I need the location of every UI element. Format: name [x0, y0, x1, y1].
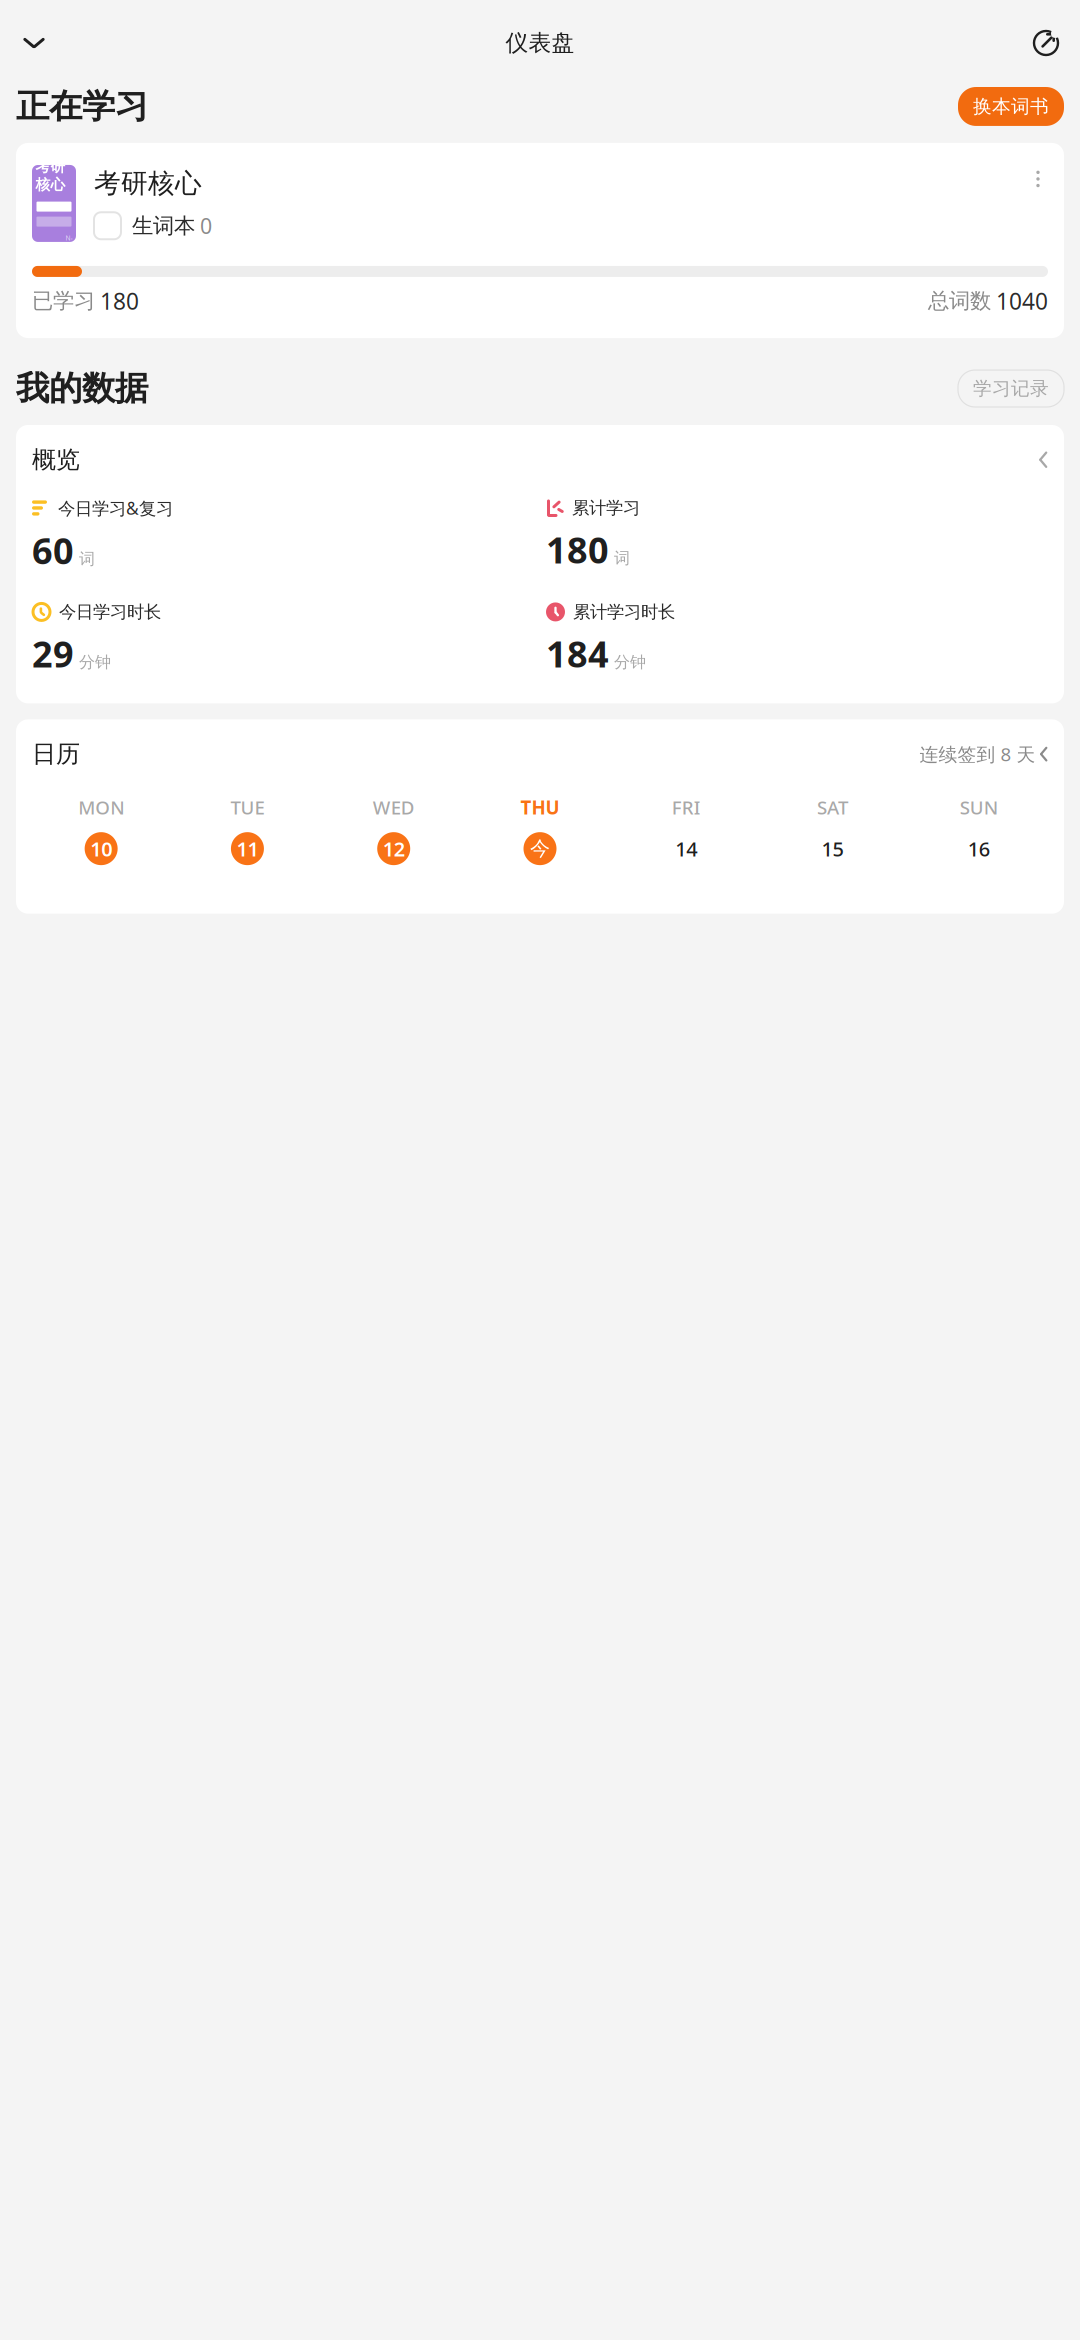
- staticText: 考研核心: [35, 158, 65, 194]
- staticText: 60: [32, 526, 74, 574]
- staticText: 考研核心: [94, 167, 202, 200]
- button[interactable]: 概览: [16, 425, 1064, 482]
- staticText: 16: [968, 835, 990, 862]
- staticText: 换本词书: [973, 95, 1049, 118]
- staticText: 1040: [996, 286, 1048, 316]
- button[interactable]: 15: [759, 832, 906, 866]
- staticText: 分钟: [614, 652, 646, 672]
- staticText: 10: [90, 835, 112, 862]
- staticText: 学习记录: [973, 377, 1049, 400]
- staticText: 累计学习时长: [573, 601, 675, 623]
- staticText: 概览: [32, 445, 80, 474]
- button[interactable]: 16: [906, 832, 1052, 866]
- button[interactable]: Collapse: [14, 23, 54, 63]
- staticText: NE: [65, 234, 72, 251]
- button[interactable]: 14: [613, 832, 759, 866]
- staticText: SAT: [817, 795, 848, 820]
- staticText: 29: [32, 630, 74, 677]
- staticText: 词: [79, 549, 95, 569]
- staticText: 今日学习&复习: [58, 496, 173, 519]
- staticText: 15: [822, 835, 844, 862]
- button[interactable]: Share: [1026, 23, 1066, 63]
- staticText: 今: [530, 836, 550, 861]
- button[interactable]: 生词本: [94, 212, 212, 240]
- staticText: 180: [100, 286, 139, 316]
- button[interactable]: 日历: [16, 719, 1064, 769]
- button[interactable]: 11: [174, 832, 321, 866]
- staticText: 累计学习: [572, 497, 640, 519]
- staticText: 生词本: [132, 213, 195, 239]
- staticText: 已学习: [32, 288, 95, 314]
- staticText: 日历: [32, 739, 80, 769]
- button[interactable]: More options: [1028, 167, 1048, 191]
- staticText: 总词数: [928, 288, 991, 314]
- staticText: WED: [373, 795, 415, 820]
- staticText: 12: [383, 835, 405, 862]
- staticText: 14: [675, 835, 697, 862]
- staticText: 今日学习时长: [59, 601, 161, 623]
- button[interactable]: 学习记录: [958, 370, 1064, 407]
- staticText: FRI: [672, 795, 701, 820]
- staticText: 正在学习: [16, 86, 148, 127]
- staticText: MON: [78, 795, 124, 820]
- staticText: 词: [614, 548, 630, 568]
- button[interactable]: 今: [467, 832, 613, 866]
- staticText: TUE: [230, 795, 264, 820]
- staticText: 180: [546, 526, 609, 573]
- staticText: 仪表盘: [505, 29, 574, 57]
- staticText: 分钟: [79, 652, 111, 672]
- staticText: N: [35, 241, 41, 251]
- staticText: 0: [200, 212, 212, 240]
- staticText: SUN: [960, 795, 998, 820]
- staticText: THU: [520, 795, 559, 820]
- staticText: 我的数据: [16, 368, 148, 409]
- button[interactable]: 10: [28, 832, 174, 866]
- staticText: 连续签到 8 天: [919, 742, 1035, 766]
- staticText: 184: [546, 630, 609, 677]
- button[interactable]: 换本词书: [958, 87, 1064, 126]
- button[interactable]: 12: [321, 832, 467, 866]
- staticText: 11: [236, 835, 258, 862]
